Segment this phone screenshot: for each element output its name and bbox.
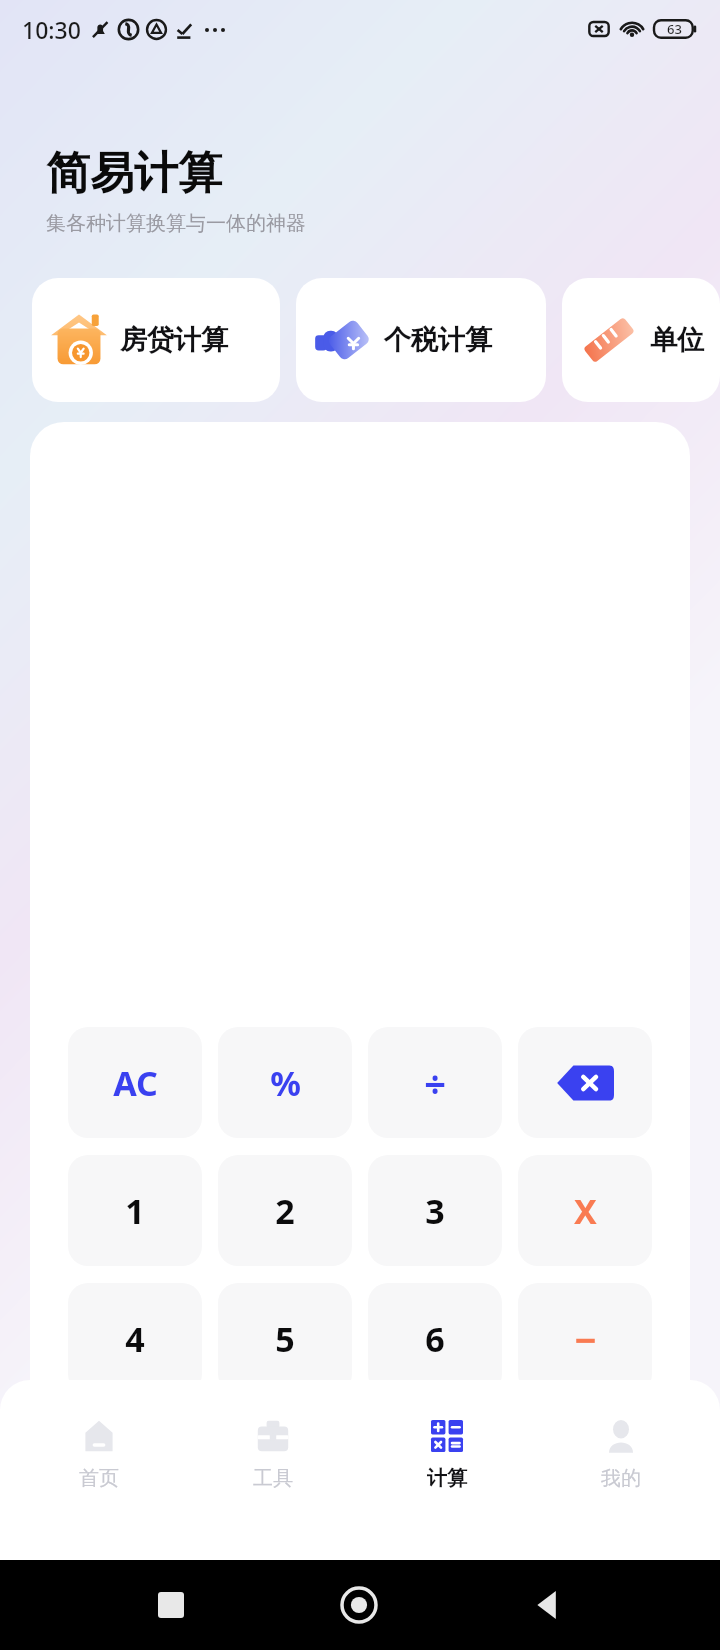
button[interactable]: . (368, 1539, 502, 1650)
button[interactable]: − (518, 1283, 652, 1394)
staticText: 个税计算 (384, 323, 492, 357)
button[interactable]: 单位换算 (562, 278, 720, 402)
button[interactable]: = (518, 1539, 652, 1650)
button[interactable]: + (518, 1411, 652, 1522)
button[interactable]: 4 (68, 1283, 202, 1394)
button[interactable]: 工具 (198, 1408, 348, 1497)
staticText: 单位换算 (650, 323, 704, 357)
staticText: 6 (425, 1316, 445, 1362)
staticText: 9 (425, 1444, 445, 1490)
button[interactable]: X (518, 1155, 652, 1266)
button[interactable]: 0 (218, 1539, 352, 1650)
other: Recents (158, 1592, 184, 1618)
staticText: 3 (425, 1188, 445, 1234)
button[interactable]: Backspace (518, 1027, 652, 1138)
staticText: % (270, 1060, 301, 1106)
staticText: 10:30 (22, 14, 81, 45)
button[interactable]: 7 (68, 1411, 202, 1522)
button[interactable]: 5 (218, 1283, 352, 1394)
staticText: 房贷计算 (120, 323, 228, 357)
staticText: 4 (125, 1316, 145, 1362)
staticText: 工具 (253, 1466, 293, 1491)
button[interactable]: 9 (368, 1411, 502, 1522)
button[interactable]: AC (68, 1027, 202, 1138)
staticText: 计算 (427, 1466, 467, 1491)
staticText: 首页 (79, 1466, 119, 1491)
button[interactable]: 3 (368, 1155, 502, 1266)
button[interactable]: 首页 (24, 1408, 174, 1497)
button[interactable]: ÷ (368, 1027, 502, 1138)
other: Home (342, 1588, 376, 1622)
staticText: 8 (275, 1444, 295, 1490)
staticText: AC (113, 1060, 158, 1106)
button[interactable]: 计算 (372, 1408, 522, 1497)
staticText: 5 (275, 1316, 295, 1362)
button[interactable]: 2 (218, 1155, 352, 1266)
staticText: 2 (275, 1188, 295, 1234)
staticText: 集各种计算换算与一体的神器 (46, 211, 306, 236)
other: Back (534, 1591, 562, 1619)
button[interactable]: 我的 (546, 1408, 696, 1497)
button[interactable]: 6 (368, 1283, 502, 1394)
button[interactable]: 房贷计算 (32, 278, 280, 402)
staticText: − (574, 1313, 597, 1365)
staticText: 简易计算 (46, 146, 222, 201)
button[interactable]: 1 (68, 1155, 202, 1266)
button[interactable]: % (218, 1027, 352, 1138)
staticText: ÷ (424, 1057, 446, 1109)
button[interactable]: 8 (218, 1411, 352, 1522)
button[interactable]: 个税计算 (296, 278, 546, 402)
staticText: 我的 (601, 1466, 641, 1491)
button[interactable]: Undo (68, 1539, 202, 1650)
staticText: X (574, 1188, 597, 1234)
staticText: 63 (667, 20, 682, 38)
staticText: 1 (125, 1188, 145, 1234)
